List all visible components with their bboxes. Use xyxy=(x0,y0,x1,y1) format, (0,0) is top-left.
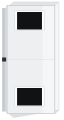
button[interactable]: Enclosure door panel with two window cut… xyxy=(0,0,64,120)
